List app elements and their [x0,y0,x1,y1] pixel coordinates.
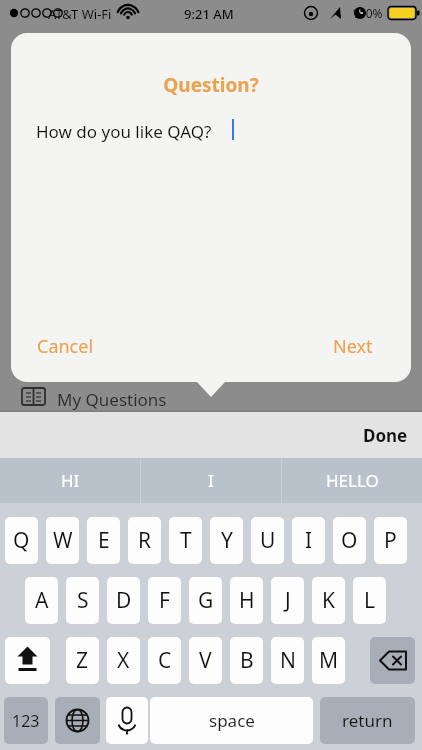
staticText: S [77,586,89,615]
button[interactable]: I [292,517,325,564]
staticText: H [239,586,255,615]
button[interactable]: B [230,637,263,684]
staticText: Q [13,526,30,555]
button[interactable]: M [312,637,345,684]
button[interactable]: Dictate [106,697,148,744]
staticText: Question? [0,72,422,98]
button[interactable]: T [169,517,202,564]
staticText: 100% [352,5,383,21]
button[interactable]: Y [210,517,243,564]
button[interactable]: space [150,697,313,744]
button[interactable]: Q [5,517,38,564]
staticText: X [117,646,130,675]
button[interactable]: L [353,577,386,624]
button[interactable]: U [251,517,284,564]
staticText: HELLO [326,469,379,492]
button[interactable]: O [333,517,366,564]
button[interactable]: K [312,577,345,624]
staticText: G [198,586,214,615]
button[interactable]: X [107,637,140,684]
staticText: U [260,526,276,555]
button[interactable]: F [148,577,181,624]
staticText: P [384,526,397,555]
button[interactable]: G [189,577,222,624]
button[interactable]: My Questions [0,386,422,412]
staticText: 9:21 AM [184,5,234,23]
button[interactable]: Switch keyboard [55,697,100,744]
button[interactable]: HELLO [282,458,422,503]
staticText: V [199,646,212,675]
staticText: Cancel [37,334,94,359]
staticText: D [116,586,132,615]
button[interactable]: J [271,577,304,624]
staticText: W [53,526,73,555]
staticText: I [208,469,214,492]
button[interactable]: H [230,577,263,624]
staticText: space [209,709,255,732]
staticText: Y [221,526,233,555]
staticText: AT&T Wi-Fi [48,5,112,23]
staticText: L [364,586,376,615]
button[interactable]: N [271,637,304,684]
staticText: R [138,526,152,555]
staticText: I [305,526,313,555]
button[interactable]: A [25,577,58,624]
button[interactable]: D [107,577,140,624]
staticText: E [98,526,110,555]
staticText: HI [61,469,80,492]
button[interactable]: Z [66,637,99,684]
staticText: 123 [12,710,40,732]
button[interactable]: W [46,517,79,564]
button[interactable]: Done [363,424,408,447]
button[interactable]: E [87,517,120,564]
button[interactable]: Backspace [370,637,415,684]
button[interactable]: Cancel [37,334,94,359]
staticText: C [158,646,172,675]
button[interactable]: I [141,458,281,503]
staticText: Done [363,424,408,447]
button[interactable]: V [189,637,222,684]
staticText: Z [76,646,89,675]
button[interactable]: S [66,577,99,624]
staticText: K [322,586,335,615]
button[interactable]: HI [0,458,140,503]
staticText: N [280,646,296,675]
staticText: O [341,526,358,555]
staticText: T [180,526,192,555]
staticText: Next [333,334,373,359]
button[interactable]: P [374,517,407,564]
staticText: F [159,586,170,615]
button[interactable]: return [320,697,415,744]
button[interactable]: Shift [5,637,50,684]
button[interactable]: Next [333,334,373,359]
staticText: return [342,709,393,732]
button[interactable]: C [148,637,181,684]
staticText: J [285,586,291,615]
staticText: B [240,646,254,675]
staticText: My Questions [57,388,167,411]
staticText: A [35,586,49,615]
staticText: M [319,646,339,675]
button[interactable]: 123 [4,697,48,744]
button[interactable]: R [128,517,161,564]
staticText: How do you like QAQ? [36,120,212,143]
